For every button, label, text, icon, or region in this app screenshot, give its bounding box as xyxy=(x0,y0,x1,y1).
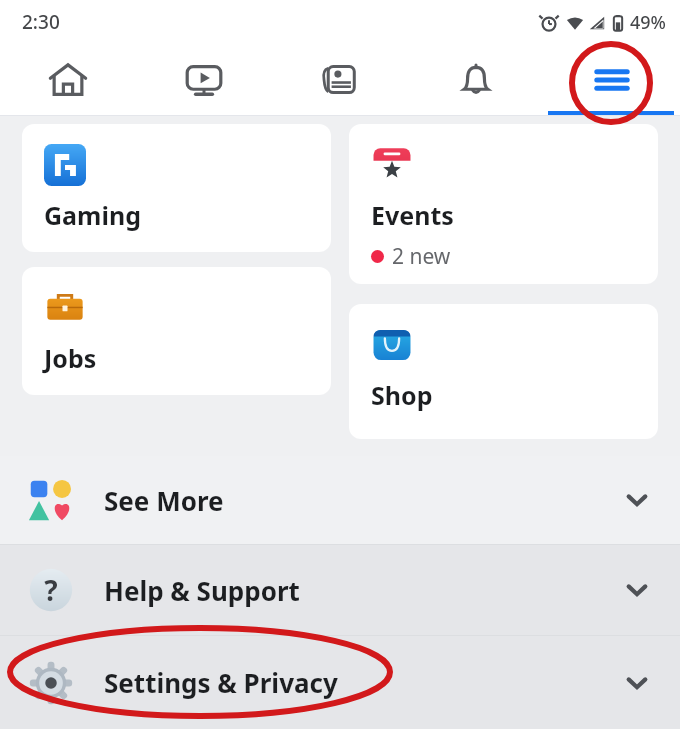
staticText: Help & Support xyxy=(104,573,300,608)
button[interactable]: Jobs xyxy=(22,267,331,395)
button[interactable]: Events xyxy=(349,124,658,284)
button[interactable]: Settings & Privacy xyxy=(0,636,680,729)
button[interactable]: Gaming xyxy=(22,124,331,252)
staticText: 2 new xyxy=(392,242,451,271)
staticText: 49% xyxy=(630,10,666,35)
button[interactable]: ? xyxy=(0,545,680,635)
button[interactable]: See More xyxy=(0,456,680,544)
staticText: Gaming xyxy=(44,198,141,232)
staticText: See More xyxy=(104,483,224,518)
button[interactable]: Menu xyxy=(544,44,680,116)
staticText: Events xyxy=(371,198,454,232)
staticText: Settings & Privacy xyxy=(104,665,338,700)
button[interactable]: Notifications xyxy=(408,44,544,116)
button[interactable]: Home xyxy=(0,44,136,116)
button[interactable]: Shop xyxy=(349,304,658,439)
button[interactable]: Watch xyxy=(136,44,272,116)
staticText: 2:30 xyxy=(22,9,60,35)
staticText: ? xyxy=(44,571,58,609)
button[interactable]: News xyxy=(272,44,408,116)
staticText: Shop xyxy=(371,378,433,412)
staticText: Jobs xyxy=(44,341,97,375)
